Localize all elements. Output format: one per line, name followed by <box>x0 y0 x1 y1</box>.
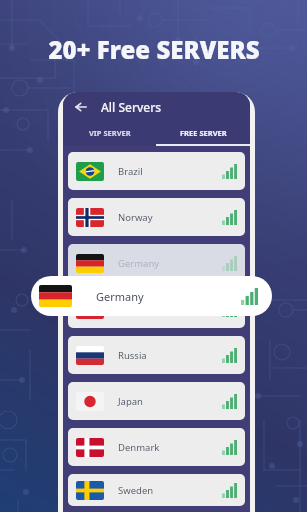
button[interactable]: Back <box>69 95 93 119</box>
staticText: Japan <box>118 395 222 408</box>
other: Signal strength <box>222 394 237 409</box>
staticText: VIP SERVER <box>89 128 131 138</box>
staticText: Denmark <box>118 441 222 454</box>
button[interactable]: Russia <box>68 336 245 374</box>
button[interactable]: Germany <box>68 244 245 282</box>
other: Signal strength <box>222 348 237 363</box>
button[interactable]: Brazil <box>68 152 245 190</box>
staticText: FREE SERVER <box>180 128 227 138</box>
staticText: 20+ Free SERVERS <box>48 33 260 66</box>
button[interactable]: Sweden <box>68 474 245 506</box>
staticText: Brazil <box>118 165 222 178</box>
other: Signal strength <box>222 210 237 225</box>
button[interactable]: Hong Kong <box>68 290 245 328</box>
staticText: Germany <box>118 257 222 270</box>
other: Signal strength <box>222 256 237 271</box>
other: Signal strength <box>222 440 237 455</box>
staticText: Germany <box>96 289 241 304</box>
other: Signal strength <box>241 288 258 305</box>
button[interactable]: Germany <box>31 276 272 316</box>
other: Signal strength <box>222 483 237 498</box>
staticText: Russia <box>118 349 222 362</box>
staticText: Sweden <box>118 484 222 497</box>
staticText: Hong Kong <box>118 303 222 316</box>
staticText: Norway <box>118 211 222 224</box>
other: Signal strength <box>222 302 237 317</box>
button[interactable]: Norway <box>68 198 245 236</box>
button[interactable]: FREE SERVER <box>156 122 250 144</box>
button[interactable]: VIP SERVER <box>63 122 156 144</box>
button[interactable]: Denmark <box>68 428 245 466</box>
button[interactable]: Japan <box>68 382 245 420</box>
staticText: All Servers <box>101 99 162 115</box>
other: Signal strength <box>222 164 237 179</box>
